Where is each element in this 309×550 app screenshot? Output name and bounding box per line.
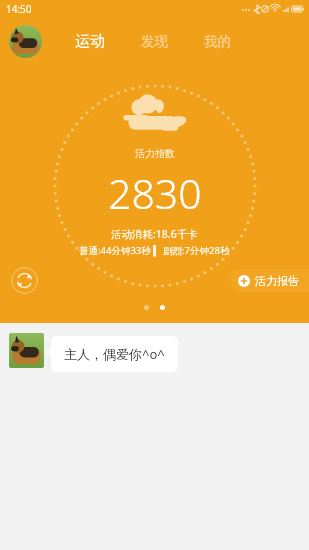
staticText: 普通:44分钟33秒 ▍ 剧烈:7分钟28秒: [79, 244, 230, 257]
staticText: 发现: [141, 33, 168, 50]
button[interactable]: 主人，偶爱你^o^: [9, 333, 309, 372]
button[interactable]: Profile avatar: [9, 25, 42, 58]
staticText: 我的: [204, 33, 231, 50]
staticText: 14:50: [6, 2, 32, 16]
button[interactable]: 活力报告: [230, 269, 309, 292]
staticText: 活力报告: [255, 274, 299, 288]
button[interactable]: Refresh: [11, 267, 38, 294]
button[interactable]: 发现: [139, 29, 170, 54]
button[interactable]: 我的: [202, 29, 233, 54]
staticText: 2830: [108, 165, 202, 221]
staticText: 活力指数: [135, 147, 175, 160]
staticText: 主人，偶爱你^o^: [64, 345, 165, 363]
staticText: 活动消耗:18.6千卡: [111, 227, 198, 241]
button[interactable]: 运动: [73, 28, 107, 55]
staticText: 运动: [75, 32, 105, 51]
